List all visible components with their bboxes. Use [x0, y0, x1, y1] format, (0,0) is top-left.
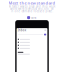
- staticText: Meet the new standard: [8, 0, 55, 6]
- staticText: A faster way to plan and ship work: [9, 5, 55, 8]
- staticText: acme: [31, 16, 37, 19]
- staticText: in one calm and focused place.: [10, 9, 53, 13]
- staticText: across every team that you run, all: [10, 7, 54, 10]
- staticText: Inbox: [18, 28, 26, 32]
